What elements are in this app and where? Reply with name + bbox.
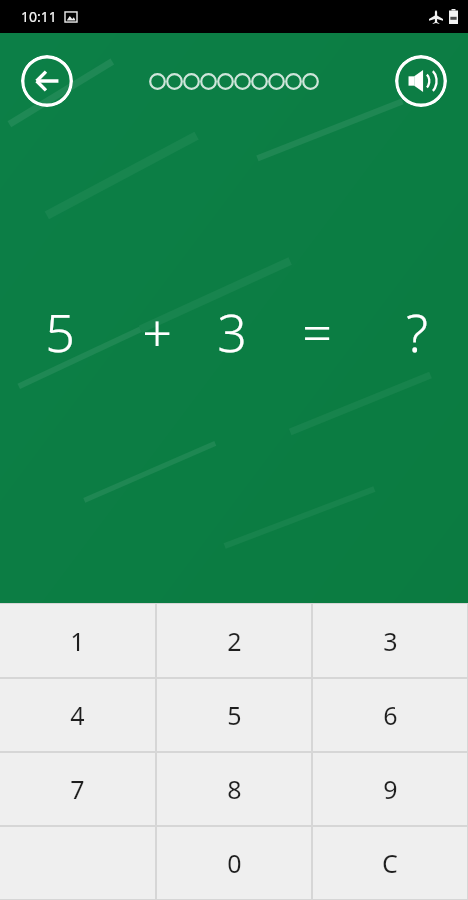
- staticText: 5: [227, 698, 242, 732]
- staticText: 0: [227, 846, 242, 880]
- staticText: 9: [383, 772, 398, 806]
- button[interactable]: 1: [0, 604, 155, 677]
- button[interactable]: Sound: [395, 55, 447, 107]
- button[interactable]: 9: [313, 753, 467, 825]
- staticText: ?: [406, 296, 428, 367]
- staticText: 8: [227, 772, 242, 806]
- button[interactable]: C: [313, 827, 467, 899]
- button[interactable]: 4: [0, 679, 155, 751]
- staticText: 1: [70, 624, 85, 658]
- staticText: 7: [70, 772, 85, 806]
- staticText: =: [302, 296, 332, 367]
- staticText: 10:11: [21, 7, 57, 26]
- button[interactable]: 0: [157, 827, 311, 899]
- button[interactable]: Back: [21, 55, 73, 107]
- staticText: 3: [383, 624, 398, 658]
- button[interactable]: 3: [313, 604, 467, 677]
- staticText: +: [142, 296, 172, 367]
- button[interactable]: 5: [157, 679, 311, 751]
- button[interactable]: 2: [157, 604, 311, 677]
- staticText: 5: [45, 296, 75, 367]
- staticText: 2: [227, 624, 242, 658]
- button[interactable]: 7: [0, 753, 155, 825]
- button[interactable]: 6: [313, 679, 467, 751]
- staticText: 6: [383, 698, 398, 732]
- button[interactable]: 8: [157, 753, 311, 825]
- staticText: 4: [70, 698, 85, 732]
- staticText: 3: [217, 296, 247, 367]
- staticText: C: [382, 846, 398, 880]
